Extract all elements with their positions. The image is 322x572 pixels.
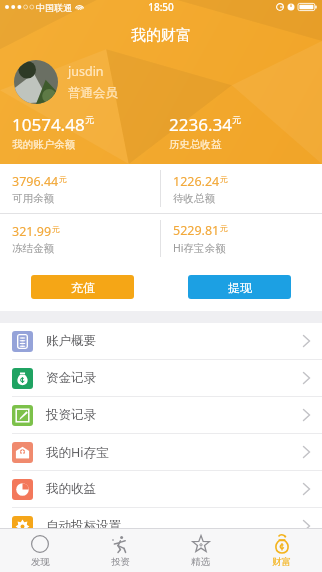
button[interactable]: 我的收益 bbox=[0, 471, 322, 507]
staticText: 3796.44 bbox=[12, 173, 59, 190]
staticText: 待收总额 bbox=[173, 192, 215, 205]
staticText: 账户概要 bbox=[46, 333, 96, 349]
staticText: 元 bbox=[220, 223, 228, 233]
staticText: 2236.34 bbox=[169, 113, 232, 136]
staticText: Hi存宝余额 bbox=[173, 241, 226, 255]
button[interactable]: 我的Hi存宝 bbox=[0, 434, 322, 470]
staticText: 投资记录 bbox=[46, 407, 96, 423]
button[interactable]: 财富 bbox=[241, 529, 322, 572]
staticText: 321.99 bbox=[12, 223, 52, 240]
staticText: 提现 bbox=[228, 280, 252, 295]
button[interactable]: 提现 bbox=[188, 275, 291, 299]
button[interactable]: 自动投标设置 bbox=[0, 508, 322, 544]
button[interactable]: 精选 bbox=[160, 529, 241, 572]
button[interactable]: 账户概要 bbox=[0, 323, 322, 359]
button[interactable]: 投资 bbox=[80, 529, 160, 572]
staticText: 元 bbox=[85, 114, 94, 125]
staticText: 5229.81 bbox=[173, 222, 220, 239]
staticText: 财富 bbox=[272, 556, 291, 568]
staticText: 元 bbox=[220, 174, 228, 184]
staticText: 我的Hi存宝 bbox=[46, 444, 109, 461]
staticText: jusdin bbox=[68, 63, 104, 80]
staticText: 资金记录 bbox=[46, 370, 96, 386]
button[interactable]: 发现 bbox=[0, 529, 80, 572]
staticText: 元 bbox=[59, 174, 67, 184]
staticText: 精选 bbox=[191, 556, 210, 568]
staticText: 元 bbox=[232, 114, 241, 125]
staticText: 冻结金额 bbox=[12, 242, 54, 255]
staticText: 历史总收益 bbox=[169, 138, 222, 151]
staticText: 10574.48 bbox=[12, 113, 85, 136]
staticText: 我的收益 bbox=[46, 481, 96, 497]
staticText: 充值 bbox=[71, 280, 95, 295]
staticText: 18:50 bbox=[0, 0, 322, 14]
staticText: 我的账户余额 bbox=[12, 138, 75, 151]
staticText: 可用余额 bbox=[12, 192, 54, 205]
staticText: 我的财富 bbox=[0, 26, 322, 45]
staticText: 1226.24 bbox=[173, 173, 220, 190]
staticText: 发现 bbox=[31, 556, 50, 568]
staticText: 投资 bbox=[111, 556, 130, 568]
staticText: 普通会员 bbox=[68, 85, 118, 101]
staticText: 中国联通 bbox=[36, 2, 72, 13]
button[interactable]: 充值 bbox=[31, 275, 134, 299]
button[interactable]: 资金记录 bbox=[0, 360, 322, 396]
button[interactable] bbox=[14, 60, 58, 104]
button[interactable]: 投资记录 bbox=[0, 397, 322, 433]
staticText: 自动投标设置 bbox=[46, 518, 121, 534]
staticText: 元 bbox=[52, 224, 60, 234]
